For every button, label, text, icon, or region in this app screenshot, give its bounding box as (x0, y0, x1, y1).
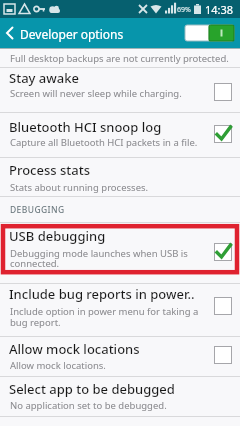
button[interactable] (185, 25, 234, 41)
button[interactable]: Include bug reports in power.. (0, 284, 240, 336)
staticText: Developer options (20, 26, 124, 42)
button[interactable]: Stay awake (0, 68, 240, 112)
staticText: bug report. (10, 316, 61, 329)
button[interactable] (0, 18, 60, 48)
staticText: Screen will never sleep while charging. (10, 87, 182, 100)
staticText: 14:38 (205, 2, 234, 17)
button[interactable]: Full desktop backups are not currently p… (0, 48, 240, 67)
staticText: Capture all Bluetooth HCI packets in a f… (10, 136, 198, 149)
staticText: DEBUGGING (10, 204, 65, 216)
staticText: USB debugging (9, 227, 106, 245)
button[interactable]: Allow mock locations (0, 337, 240, 376)
staticText: Debugging mode launches when USB is (10, 247, 188, 260)
staticText: Bluetooth HCI snoop log (9, 118, 162, 136)
staticText: Stay awake (9, 69, 79, 87)
button[interactable]: Select app to be debugged (0, 377, 240, 416)
staticText: Include option in power menu for taking … (10, 305, 199, 318)
staticText: Allow mock locations. (10, 359, 106, 372)
staticText: connected. (10, 257, 60, 270)
staticText: No application set to be debugged. (10, 399, 167, 412)
button[interactable]: Bluetooth HCI snoop log (0, 113, 240, 157)
staticText: Allow mock locations (9, 340, 140, 358)
staticText: Select app to be debugged (9, 380, 175, 398)
staticText: Stats about running processes. (10, 181, 149, 194)
staticText: Full desktop backups are not currently p… (10, 52, 229, 65)
staticText: Include bug reports in power.. (9, 285, 195, 303)
staticText: 69% (177, 5, 191, 15)
button[interactable]: USB debugging (0, 223, 240, 283)
staticText: Process stats (9, 161, 91, 179)
button[interactable]: Process stats (0, 158, 240, 196)
